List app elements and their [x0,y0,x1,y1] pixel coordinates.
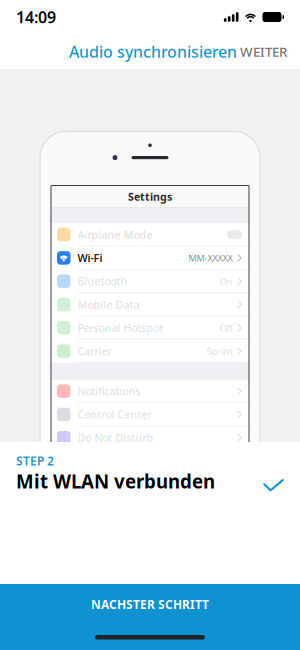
staticText: Mobile Data [77,297,139,312]
staticText: Airplane Mode [77,227,152,242]
staticText: NACHSTER SCHRITT [91,596,209,612]
staticText: WEITER [240,43,287,60]
staticText: Sprint [206,345,232,357]
staticText: Do Not Disturb [77,431,153,445]
button[interactable]: WEITER [229,34,298,69]
staticText: MM-XXXXX [188,252,232,264]
button[interactable]: NACHSTER SCHRITT [0,584,300,650]
staticText: Settings [128,189,172,204]
staticText: Personal Hotspot [77,321,163,335]
staticText: Control Center [77,407,151,421]
staticText: Bluetooth [77,274,127,288]
staticText: Mit WLAN verbunden [16,469,215,494]
staticText: Off [219,322,232,334]
staticText: 14:09 [16,6,56,28]
staticText: Wi-Fi [77,251,102,265]
staticText: Carrier [77,344,111,358]
staticText: On [219,275,232,287]
staticText: Notifications [77,384,140,398]
staticText: STEP 2 [16,453,54,469]
staticText: Audio synchronisieren [69,41,237,62]
